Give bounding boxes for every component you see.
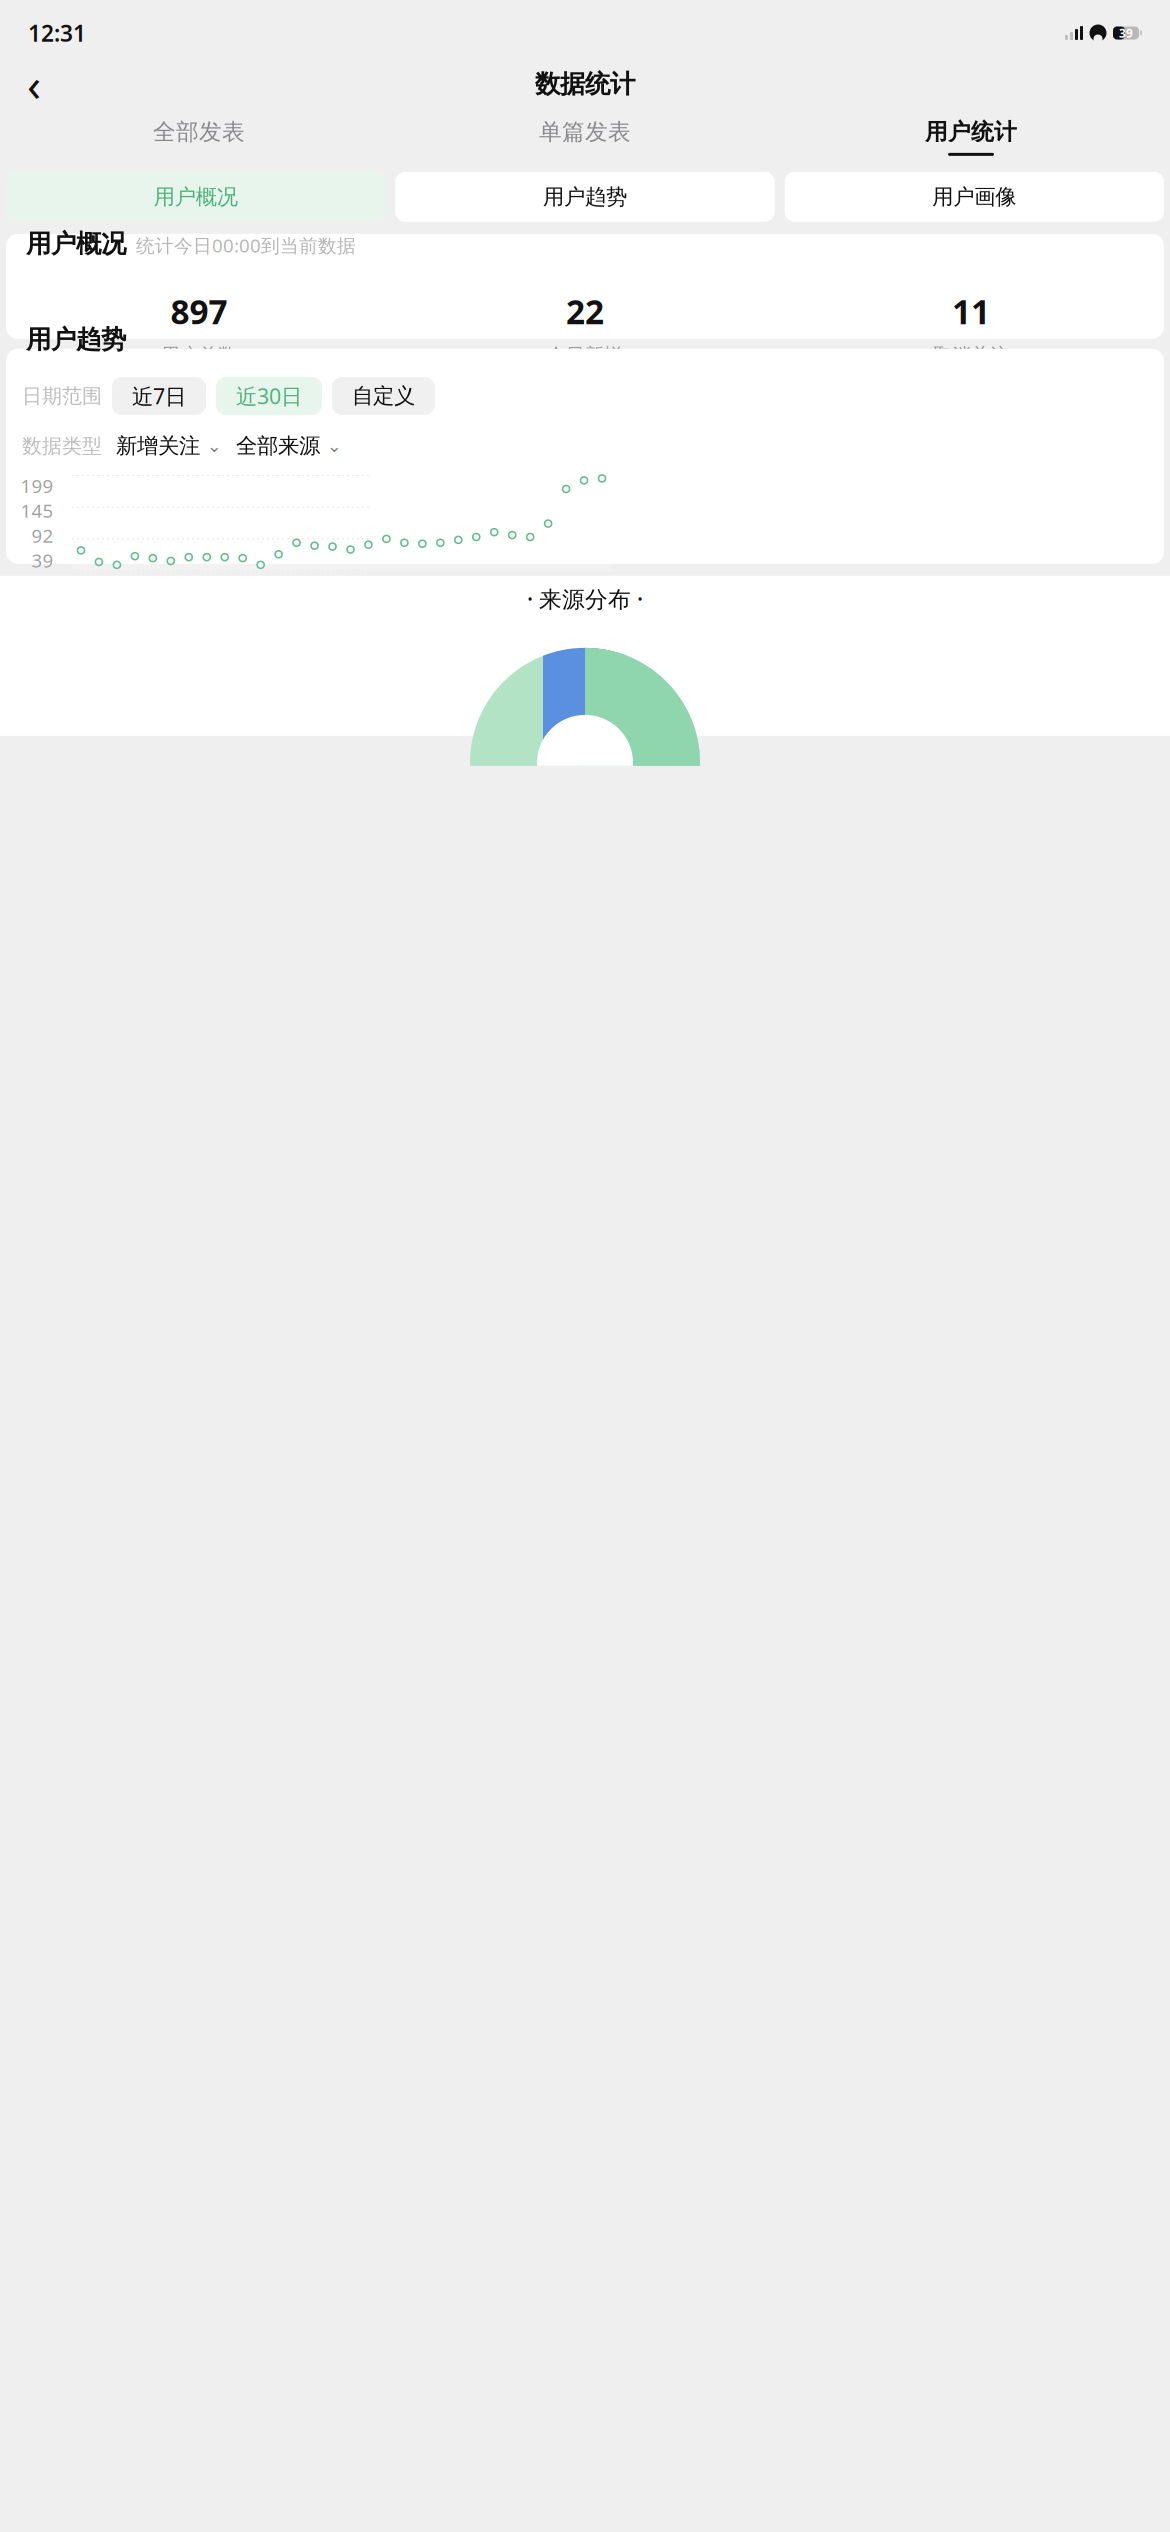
button[interactable]: 用户概况	[6, 172, 385, 222]
staticText: 日期范围	[22, 384, 102, 408]
button[interactable]: 用户趋势	[395, 172, 775, 222]
staticText: 自定义	[352, 383, 415, 409]
staticText: 92	[31, 523, 53, 548]
button[interactable]: 新增关注	[116, 433, 222, 459]
staticText: 近7日	[132, 382, 186, 410]
staticText: 全部发表	[153, 118, 245, 146]
staticText: 39	[1119, 25, 1133, 41]
button[interactable]: 自定义	[332, 377, 435, 415]
staticText: 22	[566, 289, 604, 334]
staticText: 145	[20, 498, 53, 523]
staticText: 用户总数	[161, 344, 237, 366]
staticText: 用户统计	[925, 118, 1017, 146]
staticText: 数据类型	[22, 434, 102, 458]
staticText: 取消关注	[933, 344, 1009, 366]
staticText: ⌄	[207, 436, 222, 456]
button[interactable]: Back	[12, 62, 56, 106]
staticText: 单篇发表	[539, 118, 631, 146]
button[interactable]: 用户统计	[778, 114, 1164, 160]
staticText: 用户概况	[154, 184, 238, 210]
staticText: · 来源分布 ·	[527, 584, 643, 614]
button[interactable]: 近7日	[112, 377, 206, 415]
staticText: ⌄	[327, 436, 342, 456]
staticText: 用户趋势	[543, 184, 627, 210]
staticText: 用户概况	[26, 228, 126, 259]
staticText: 用户画像	[932, 184, 1016, 210]
button[interactable]: 单篇发表	[392, 114, 778, 160]
staticText: 11	[952, 289, 990, 334]
button[interactable]: 近30日	[216, 377, 322, 415]
button[interactable]: 全部发表	[6, 114, 392, 160]
staticText: 今日新增	[547, 344, 623, 366]
staticText: 全部来源	[236, 433, 320, 459]
staticText: 用户趋势	[26, 324, 126, 355]
staticText: 897	[170, 289, 227, 334]
staticText: 12:31	[28, 18, 86, 48]
staticText: 39	[31, 548, 53, 573]
staticText: 199	[20, 473, 53, 498]
staticText: 统计今日00:00到当前数据	[136, 233, 356, 258]
button[interactable]: 用户画像	[785, 172, 1164, 222]
staticText: 数据统计	[535, 68, 635, 99]
staticText: 新增关注	[116, 433, 200, 459]
button[interactable]: 全部来源	[236, 433, 342, 459]
staticText: 近30日	[236, 382, 302, 410]
staticText: ‹	[27, 54, 41, 114]
